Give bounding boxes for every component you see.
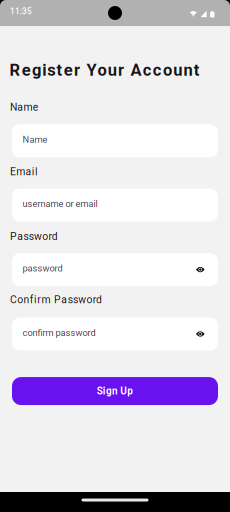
button[interactable]: Show password: [196, 331, 218, 337]
button[interactable]: username or email: [12, 189, 218, 222]
staticText: Register Your Account: [9, 60, 200, 80]
staticText: 11:35: [10, 7, 32, 16]
staticText: username or email: [22, 198, 97, 209]
staticText: Name: [22, 134, 47, 145]
staticText: Confirm Password: [10, 294, 102, 306]
button[interactable]: confirm password: [12, 317, 218, 350]
button[interactable]: Show password: [196, 267, 218, 273]
staticText: Name: [10, 101, 39, 113]
staticText: Email: [10, 165, 38, 178]
staticText: confirm password: [22, 327, 95, 338]
staticText: Sign Up: [97, 385, 133, 397]
staticText: Password: [10, 230, 58, 243]
button[interactable]: Name: [12, 124, 218, 157]
button[interactable]: Sign Up: [12, 377, 218, 405]
button[interactable]: password: [12, 253, 218, 286]
staticText: password: [22, 263, 62, 274]
